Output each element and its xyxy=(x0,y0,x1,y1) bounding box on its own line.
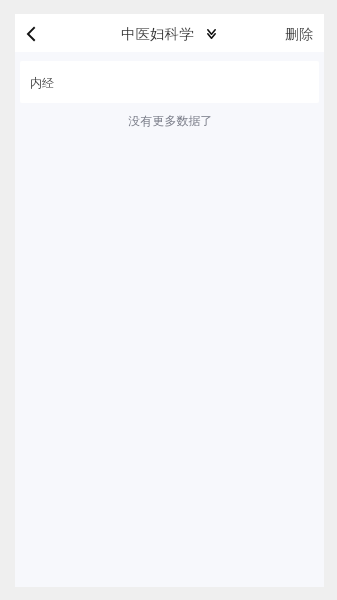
button[interactable]: 中医妇科学 xyxy=(121,25,216,43)
button[interactable]: Back xyxy=(15,15,46,53)
staticText: 没有更多数据了 xyxy=(16,113,325,128)
button[interactable]: 内经 xyxy=(20,61,319,103)
staticText: 删除 xyxy=(285,26,313,44)
staticText: 内经 xyxy=(30,75,54,90)
staticText: 中医妇科学 xyxy=(121,25,194,43)
button[interactable]: 删除 xyxy=(274,16,324,50)
